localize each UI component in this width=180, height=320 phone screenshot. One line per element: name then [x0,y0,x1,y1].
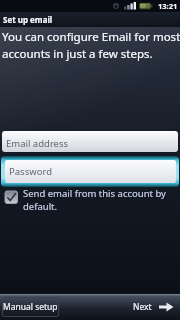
staticText: Set up email [3,14,53,25]
staticText: Manual setup [3,301,58,313]
staticText: You can configure Email for most account… [2,29,180,61]
staticText: Next [133,301,152,313]
staticText: 13:21 [158,1,178,11]
staticText: Password [9,165,52,178]
button[interactable]: Next [133,301,180,313]
button[interactable]: Password [1,156,179,187]
button[interactable]: Email address [2,131,178,152]
staticText: Email address [6,137,69,150]
button[interactable]: Send email from this account by default. [0,187,180,213]
staticText: Send email from this account by default. [23,187,166,213]
button[interactable]: Manual setup [2,297,59,317]
